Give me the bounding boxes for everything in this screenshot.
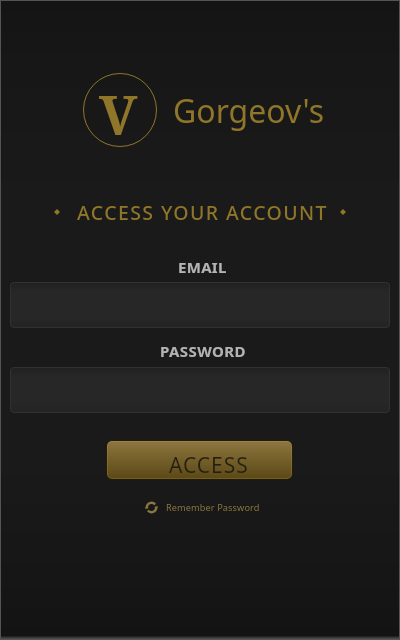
staticText: PASSWORD (160, 341, 246, 361)
staticText: Remember Password (166, 501, 260, 514)
staticText: Gorgeov's (173, 89, 325, 133)
staticText: V (99, 76, 138, 150)
staticText: EMAIL (178, 257, 227, 277)
button[interactable]: Remember Password (145, 498, 260, 516)
staticText: ACCESS (169, 451, 249, 479)
button[interactable]: ACCESS (107, 441, 292, 479)
staticText: ACCESS YOUR ACCOUNT (77, 199, 328, 226)
other: Remember Password (145, 501, 158, 514)
